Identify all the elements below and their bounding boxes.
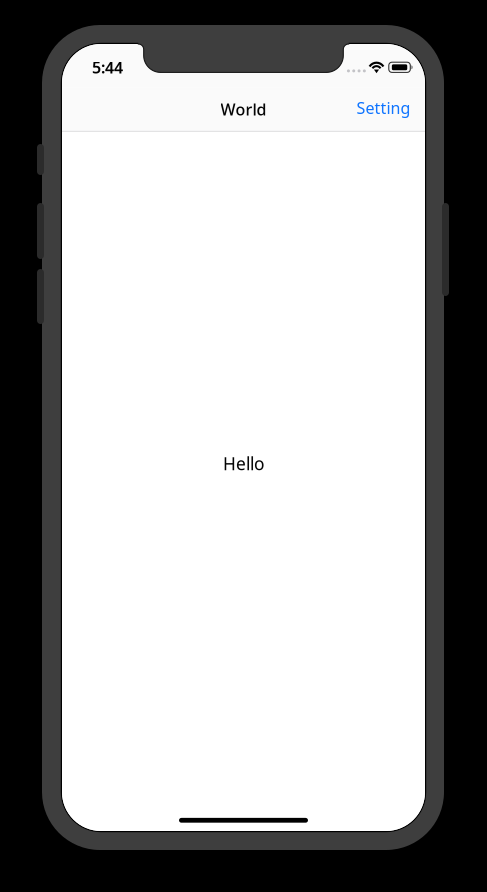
button[interactable]: Volume down — [37, 269, 44, 324]
staticText: 5:44 — [92, 57, 123, 78]
staticText: Hello — [223, 452, 264, 475]
button[interactable]: Volume up — [37, 203, 44, 259]
staticText: Setting — [356, 97, 410, 118]
button[interactable]: Setting — [344, 88, 425, 131]
button[interactable]: Ring/Silent switch — [37, 144, 44, 175]
button[interactable]: Side button — [442, 203, 449, 296]
staticText: World — [220, 99, 266, 120]
